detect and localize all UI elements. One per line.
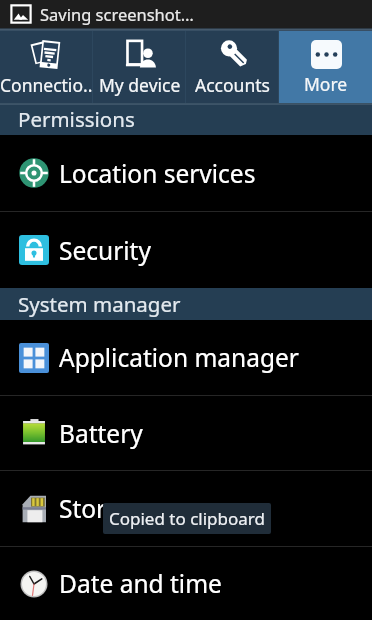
button[interactable]: Battery xyxy=(0,396,372,470)
button[interactable]: Accounts xyxy=(186,28,279,104)
button[interactable]: Security xyxy=(0,212,372,288)
button[interactable]: Date and time xyxy=(0,547,372,620)
staticText: Permissions xyxy=(18,105,135,133)
staticText: Accounts xyxy=(195,73,270,97)
button[interactable]: Connections xyxy=(0,28,93,104)
staticText: Date and time xyxy=(59,567,222,600)
button[interactable]: Application manager xyxy=(0,320,372,395)
staticText: Connectio.. xyxy=(0,73,93,97)
button[interactable]: My device xyxy=(93,28,186,104)
staticText: More xyxy=(304,72,348,96)
button[interactable]: More xyxy=(279,28,372,104)
staticText: Copied to clipboard xyxy=(109,507,265,530)
staticText: My device xyxy=(99,73,181,97)
staticText: Battery xyxy=(59,417,143,450)
button[interactable]: Storage xyxy=(0,471,372,546)
staticText: Security xyxy=(59,234,151,267)
staticText: System manager xyxy=(18,290,181,318)
staticText: Saving screenshot… xyxy=(40,3,194,25)
staticText: Application manager xyxy=(59,341,299,374)
staticText: Location services xyxy=(59,157,256,190)
staticText: Storage xyxy=(59,492,149,525)
button[interactable]: Location services xyxy=(0,135,372,211)
